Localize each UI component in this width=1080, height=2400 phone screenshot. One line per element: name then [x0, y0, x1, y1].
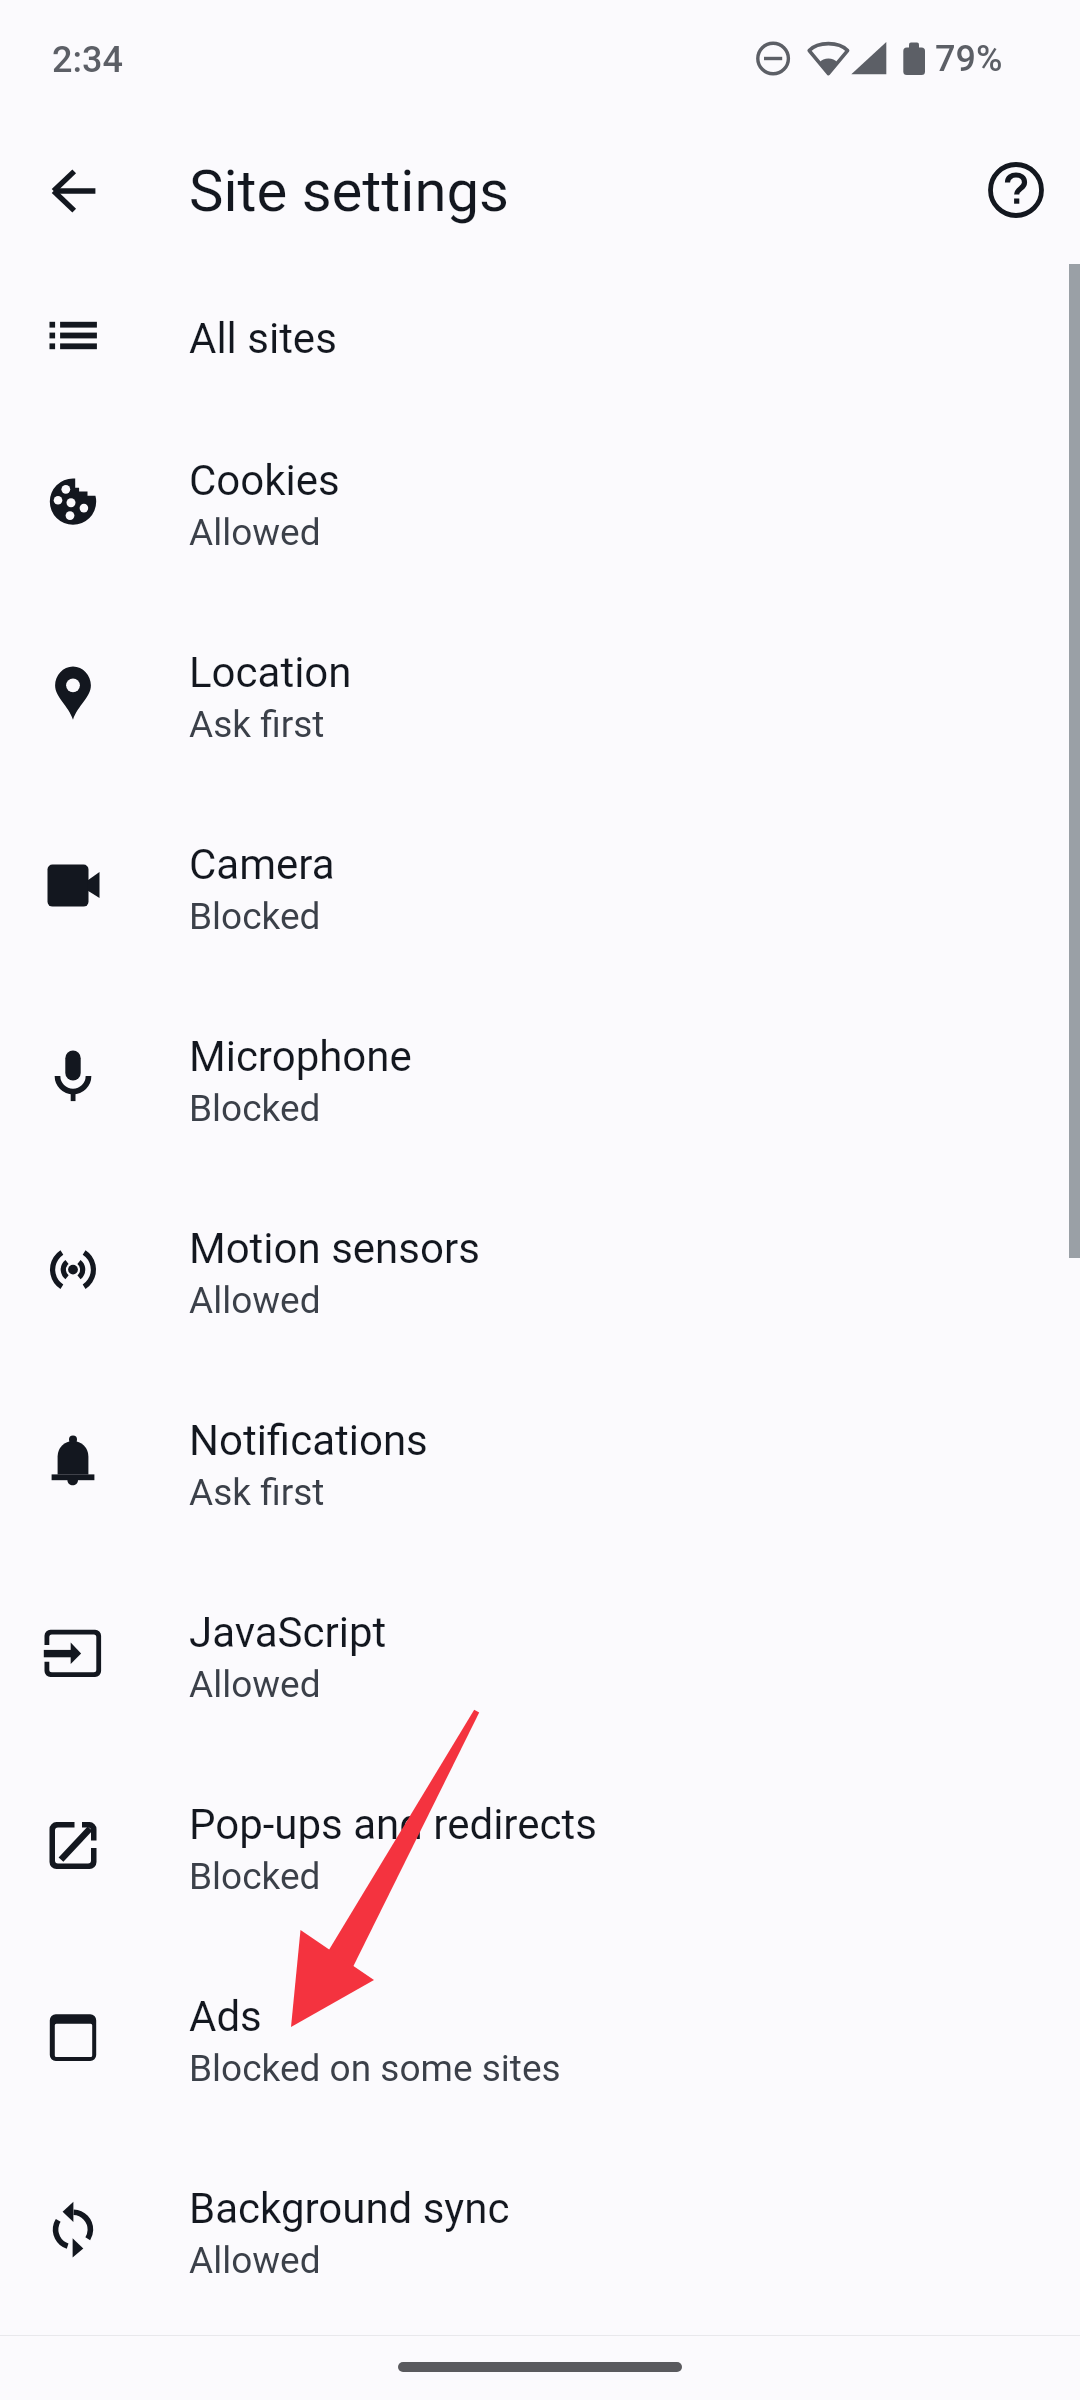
button[interactable]: Background sync	[0, 2134, 1080, 2326]
button[interactable]: JavaScript	[0, 1558, 1080, 1750]
staticText: All sites	[189, 314, 337, 363]
staticText: Cookies	[189, 456, 340, 505]
staticText: Allowed	[189, 2239, 321, 2282]
staticText: 2:34	[52, 39, 123, 81]
staticText: Camera	[189, 840, 335, 889]
button[interactable]: Cookies	[0, 406, 1080, 598]
button[interactable]: Ads	[0, 1942, 1080, 2134]
staticText: 79%	[935, 38, 1003, 80]
staticText: Allowed	[189, 1663, 321, 1706]
button[interactable]: Camera	[0, 790, 1080, 982]
staticText: Notifications	[189, 1416, 428, 1465]
button[interactable]: Pop-ups and redirects	[0, 1750, 1080, 1942]
button[interactable]: Location	[0, 598, 1080, 790]
button[interactable]: Motion sensors	[0, 1174, 1080, 1366]
button[interactable]: Back	[16, 133, 132, 249]
staticText: Allowed	[189, 1279, 321, 1322]
staticText: Blocked	[189, 1087, 321, 1130]
staticText: Blocked	[189, 895, 321, 938]
staticText: Microphone	[189, 1032, 412, 1081]
button[interactable]: Help	[958, 132, 1074, 248]
staticText: Allowed	[189, 511, 321, 554]
staticText: Location	[189, 648, 352, 697]
staticText: Site settings	[189, 157, 509, 225]
button[interactable]: Microphone	[0, 982, 1080, 1174]
staticText: Pop-ups and redirects	[189, 1800, 597, 1849]
staticText: Blocked on some sites	[189, 2047, 561, 2090]
staticText: Motion sensors	[189, 1224, 480, 1273]
staticText: Ask first	[189, 1471, 325, 1514]
button[interactable]: Notifications	[0, 1366, 1080, 1558]
button[interactable]: All sites	[0, 264, 1080, 406]
staticText: JavaScript	[189, 1608, 387, 1657]
staticText: Ask first	[189, 703, 325, 746]
staticText: Background sync	[189, 2184, 510, 2233]
staticText: Ads	[189, 1992, 262, 2041]
staticText: Blocked	[189, 1855, 321, 1898]
